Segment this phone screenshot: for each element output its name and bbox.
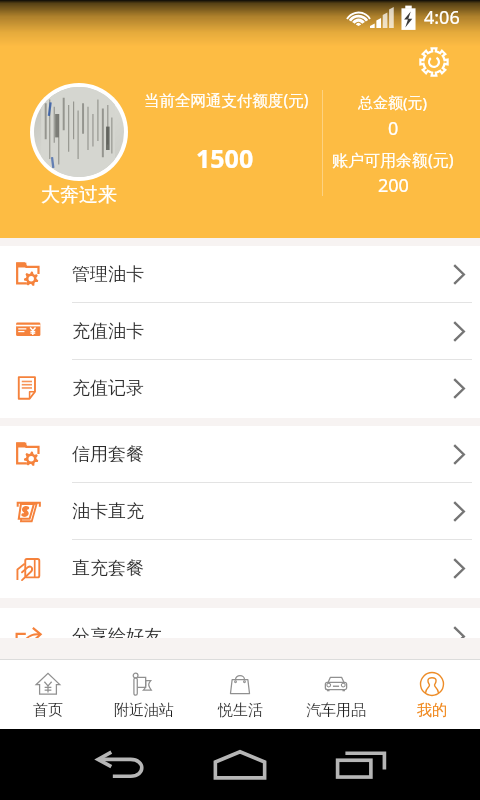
staticText: 分享给好友: [72, 625, 162, 638]
staticText: 充值记录: [72, 377, 144, 400]
staticText: 悦生活: [218, 701, 263, 720]
button[interactable]: Settings: [412, 40, 456, 84]
button[interactable]: 分享给好友: [0, 608, 480, 638]
staticText: 4:06: [424, 5, 460, 30]
staticText: 管理油卡: [72, 263, 144, 286]
button[interactable]: Home: [200, 737, 280, 793]
button[interactable]: 附近油站: [96, 660, 192, 729]
button[interactable]: 信用套餐: [0, 426, 480, 483]
button[interactable]: Profile photo: [30, 83, 128, 181]
staticText: 总金额(元): [358, 92, 428, 112]
button[interactable]: 管理油卡: [0, 246, 480, 303]
button[interactable]: 油卡直充: [0, 483, 480, 540]
button[interactable]: 悦生活: [192, 660, 288, 729]
staticText: 附近油站: [114, 701, 174, 720]
button[interactable]: 充值记录: [0, 360, 480, 417]
button[interactable]: Back: [81, 737, 161, 793]
staticText: 我的: [417, 701, 447, 720]
staticText: 首页: [33, 701, 63, 720]
staticText: 充值油卡: [72, 320, 144, 343]
staticText: 200: [378, 173, 409, 198]
button[interactable]: Recent apps: [321, 737, 401, 793]
staticText: 汽车用品: [306, 701, 366, 720]
staticText: 账户可用余额(元): [332, 149, 454, 171]
button[interactable]: 充值油卡: [0, 303, 480, 360]
button[interactable]: 汽车用品: [288, 660, 384, 729]
staticText: 油卡直充: [72, 500, 144, 523]
staticText: 大奔过来: [41, 183, 117, 207]
staticText: 直充套餐: [72, 557, 144, 580]
button[interactable]: 直充套餐: [0, 540, 480, 597]
staticText: 信用套餐: [72, 443, 144, 466]
button[interactable]: 我的: [384, 660, 480, 729]
staticText: 当前全网通支付额度(元): [144, 89, 309, 110]
staticText: 1500: [196, 141, 254, 175]
staticText: 0: [388, 116, 399, 141]
button[interactable]: 首页: [0, 660, 96, 729]
